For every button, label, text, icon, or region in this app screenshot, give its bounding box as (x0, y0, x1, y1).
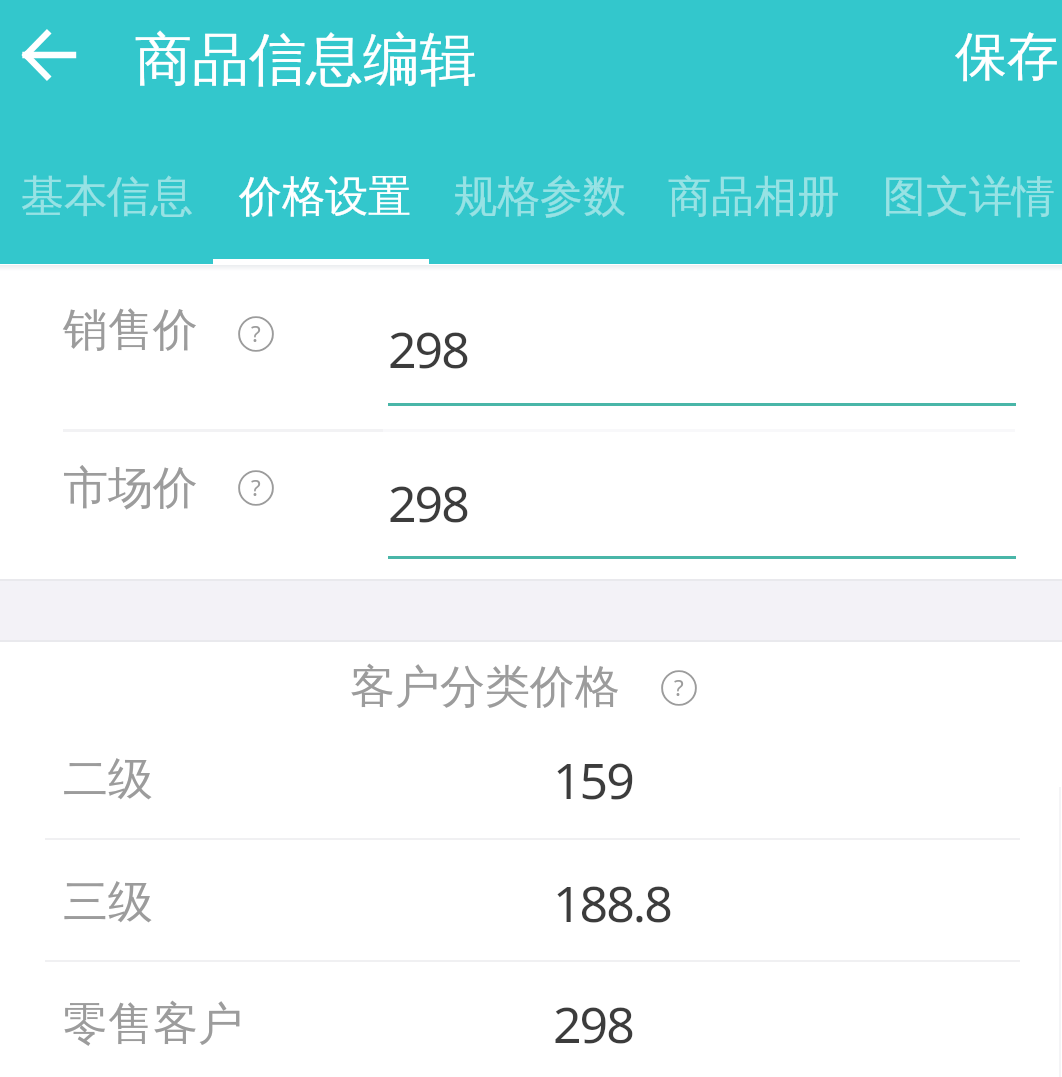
staticText: 图文详情 (883, 170, 1055, 224)
button[interactable]: 客户分类价格 (350, 659, 697, 716)
staticText: 价格设置 (239, 170, 411, 224)
button[interactable] (0, 272, 1062, 430)
button[interactable]: Back (4, 17, 88, 101)
button[interactable]: 保存 (945, 21, 1062, 93)
staticText: 基本信息 (21, 170, 193, 224)
staticText: 规格参数 (454, 170, 626, 224)
staticText: 销售价 (63, 302, 198, 359)
staticText: 零售客户 (63, 996, 243, 1053)
staticText: 三级 (63, 874, 153, 931)
button[interactable]: 基本信息 (0, 115, 215, 264)
button[interactable] (0, 718, 1062, 839)
button[interactable] (0, 432, 1062, 579)
staticText: 188.8 (553, 869, 671, 937)
button[interactable] (0, 962, 1062, 1077)
button[interactable]: 规格参数 (432, 115, 648, 264)
staticText: 商品信息编辑 (135, 24, 477, 96)
staticText: ? (251, 472, 261, 502)
staticText: 298 (388, 315, 468, 383)
staticText: 商品相册 (668, 170, 840, 224)
staticText: 客户分类价格 (350, 659, 620, 716)
staticText: ? (251, 318, 261, 348)
staticText: 保存 (955, 24, 1059, 90)
button[interactable]: 价格设置 (217, 115, 433, 264)
staticText: 159 (553, 746, 633, 814)
staticText: 市场价 (63, 460, 198, 517)
button[interactable]: 商品相册 (646, 115, 862, 264)
staticText: 二级 (63, 751, 153, 808)
staticText: ? (674, 672, 684, 702)
button[interactable] (0, 840, 1062, 961)
button[interactable]: 图文详情 (861, 115, 1062, 264)
staticText: 298 (553, 990, 633, 1058)
staticText: 298 (388, 469, 468, 537)
